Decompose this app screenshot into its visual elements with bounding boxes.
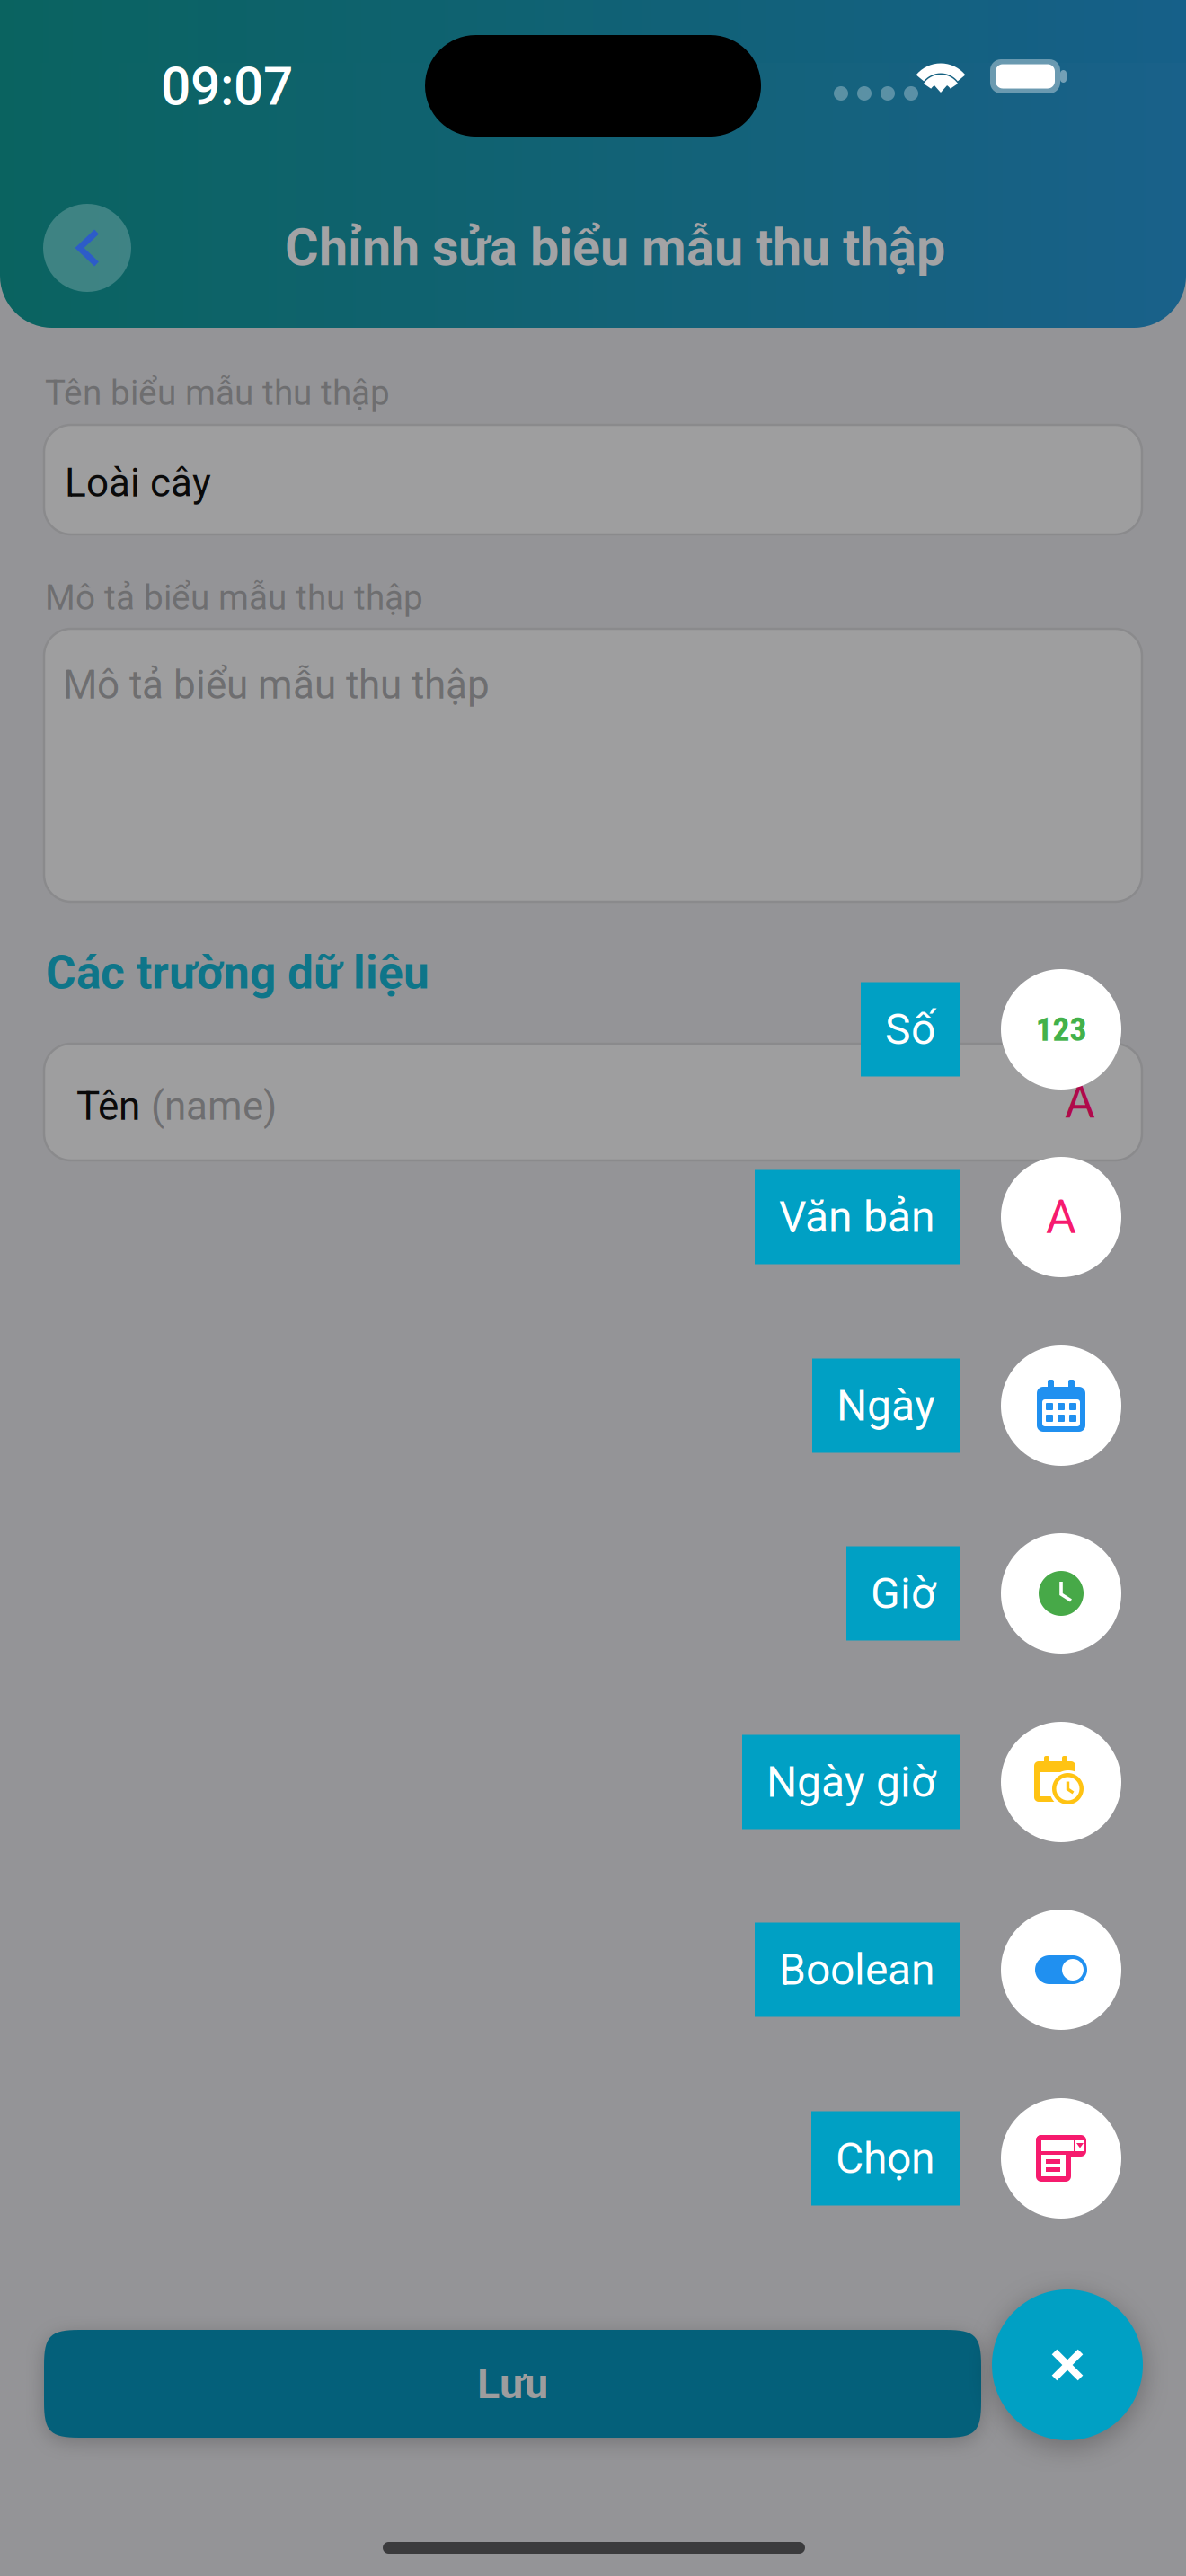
staticText: Chỉnh sửa biểu mẫu thu thập bbox=[285, 217, 945, 278]
button[interactable]: Close menu bbox=[992, 2289, 1143, 2440]
staticText: Giờ bbox=[871, 1568, 935, 1619]
staticText: Tên bbox=[76, 1083, 140, 1130]
staticText: Boolean bbox=[779, 1944, 935, 1995]
staticText: Văn bản bbox=[779, 1192, 935, 1242]
button[interactable]: Ngày bbox=[0, 1345, 1186, 1466]
button[interactable]: Lưu bbox=[44, 2330, 981, 2438]
button[interactable]: Ngày giờ bbox=[0, 1722, 1186, 1842]
button[interactable]: Back bbox=[43, 204, 131, 292]
staticText: Loài cây bbox=[65, 460, 211, 506]
button[interactable]: Boolean bbox=[0, 1910, 1186, 2030]
staticText: A bbox=[1046, 1190, 1076, 1244]
button[interactable]: Số bbox=[0, 969, 1186, 1090]
button[interactable]: Giờ bbox=[0, 1533, 1186, 1654]
staticText: (name) bbox=[151, 1083, 277, 1130]
staticText: A bbox=[1065, 1074, 1095, 1129]
staticText: Tên biểu mẫu thu thập bbox=[45, 373, 390, 413]
staticText: 123 bbox=[1036, 1010, 1087, 1049]
staticText: Mô tả biểu mẫu thu thập bbox=[45, 578, 423, 618]
staticText: Lưu bbox=[477, 2359, 548, 2408]
button[interactable]: Chọn bbox=[0, 2098, 1186, 2219]
staticText: 09:07 bbox=[161, 56, 293, 117]
staticText: Số bbox=[885, 1004, 935, 1055]
staticText: Các trường dữ liệu bbox=[46, 946, 429, 1000]
staticText: Ngày giờ bbox=[766, 1757, 935, 1807]
staticText: Chọn bbox=[836, 2133, 935, 2184]
button[interactable]: Văn bản bbox=[0, 1157, 1186, 1277]
staticText: Mô tả biểu mẫu thu thập bbox=[63, 662, 490, 708]
staticText: Ngày bbox=[836, 1380, 935, 1431]
